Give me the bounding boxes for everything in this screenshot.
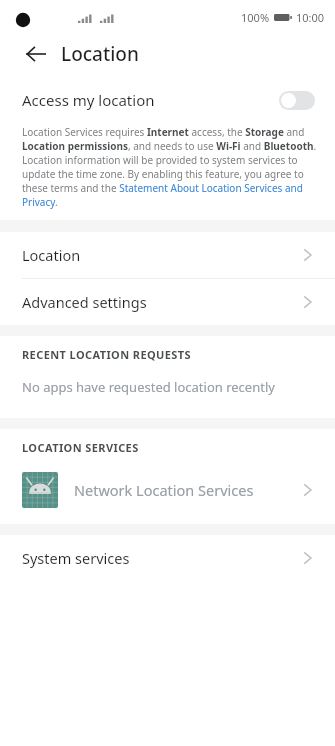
staticText: Access my location [22,90,279,110]
staticText: Location [22,245,303,265]
staticText: System services [22,548,303,568]
staticText: Network Location Services [74,480,303,500]
staticText: Advanced settings [22,292,303,312]
button[interactable]: Network Location Services [0,464,335,516]
button[interactable]: System services [0,535,335,581]
staticText: 100% [241,10,270,25]
button[interactable]: Advanced settings [0,279,335,325]
button[interactable]: Location [0,232,335,278]
staticText: No apps have requested location recently [22,378,275,396]
staticText: 10:00 [296,10,325,25]
staticText: Location [61,41,139,67]
staticText: Location Services requires Internet acce… [22,125,317,209]
staticText: RECENT LOCATION REQUESTS [22,347,192,362]
staticText: LOCATION SERVICES [22,440,139,455]
button[interactable]: Access my location [0,83,335,117]
button[interactable]: Back [22,40,50,68]
